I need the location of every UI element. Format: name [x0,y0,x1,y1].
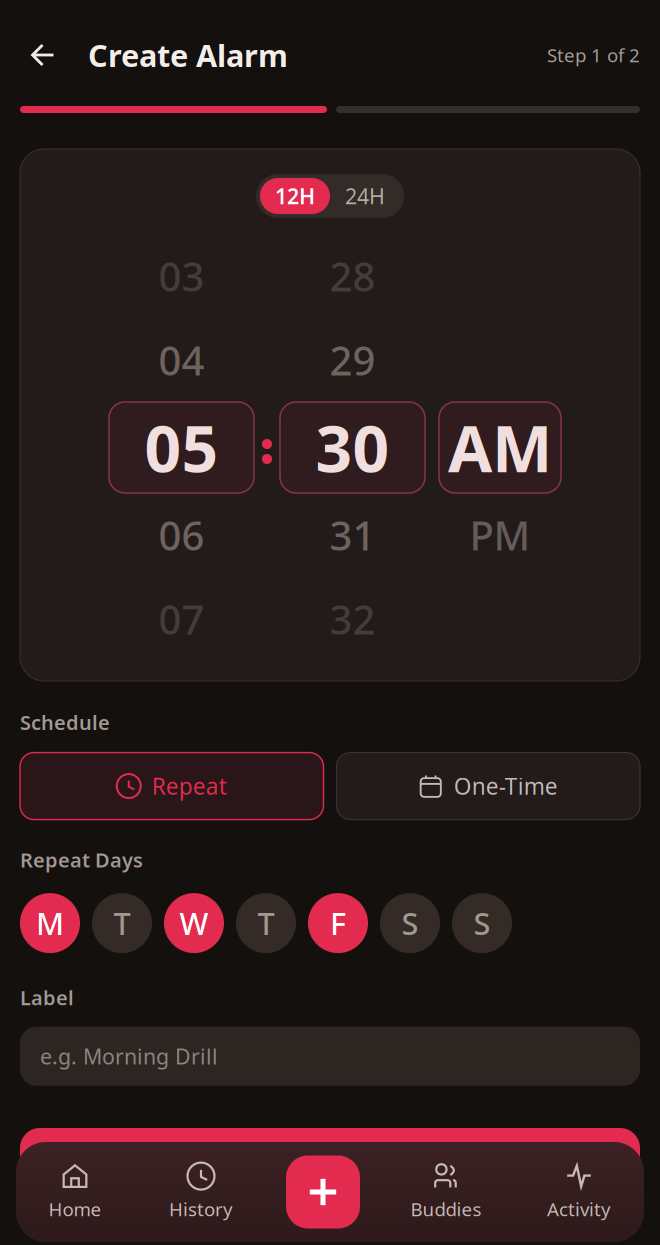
button[interactable]: Home [16,1142,134,1242]
button[interactable]: S [452,893,512,953]
staticText: 28 [329,249,375,302]
staticText: M [36,903,64,943]
staticText: 04 [158,333,204,386]
button[interactable]: T [92,893,152,953]
staticText: W [179,903,208,943]
staticText: 05 [144,405,218,490]
staticText: 24H [345,182,385,210]
staticText: F [330,903,346,943]
button[interactable]: Add alarm [286,1155,360,1228]
button[interactable]: 05 [109,402,254,493]
button[interactable]: W [164,893,224,953]
staticText: S [473,903,490,943]
button[interactable]: Continue [0,1128,660,1200]
button[interactable]: F [308,893,368,953]
staticText: 07 [158,592,204,645]
staticText: 30 [315,405,389,490]
button[interactable]: 30 [280,402,425,493]
button[interactable]: T [236,893,296,953]
staticText: Repeat Days [20,847,143,873]
button[interactable]: Repeat [20,753,323,820]
staticText: PM [469,508,530,561]
button[interactable]: 12H [260,178,330,214]
button[interactable]: M [20,893,80,953]
button[interactable]: Activity [514,1142,644,1242]
button[interactable]: S [380,893,440,953]
staticText: Home [48,1197,101,1221]
staticText: Buddies [410,1197,481,1221]
staticText: Repeat [152,771,227,801]
staticText: S [401,903,418,943]
button[interactable]: AM [439,402,561,493]
button[interactable]: One-Time [336,753,640,820]
staticText: Label [20,984,74,1011]
button[interactable]: History [134,1142,268,1242]
staticText: AM [448,405,552,490]
staticText: 29 [329,333,375,386]
staticText: Activity [547,1197,611,1221]
staticText: Create Alarm [88,35,288,75]
staticText: T [113,903,130,943]
staticText: 12H [275,182,315,210]
button[interactable]: 24H [330,178,400,214]
staticText: 03 [158,249,204,302]
staticText: One-Time [454,771,558,801]
staticText: Step 1 of 2 [547,43,640,67]
button[interactable]: Buddies [378,1142,514,1242]
staticText: Schedule [20,709,110,736]
button[interactable]: Back [20,32,66,78]
staticText: 06 [158,508,204,561]
staticText: 32 [329,592,375,645]
staticText: 31 [329,508,375,561]
staticText: e.g. Morning Drill [40,1042,218,1070]
button[interactable]: e.g. Morning Drill [20,1027,640,1086]
staticText: History [169,1197,233,1221]
staticText: T [257,903,274,943]
